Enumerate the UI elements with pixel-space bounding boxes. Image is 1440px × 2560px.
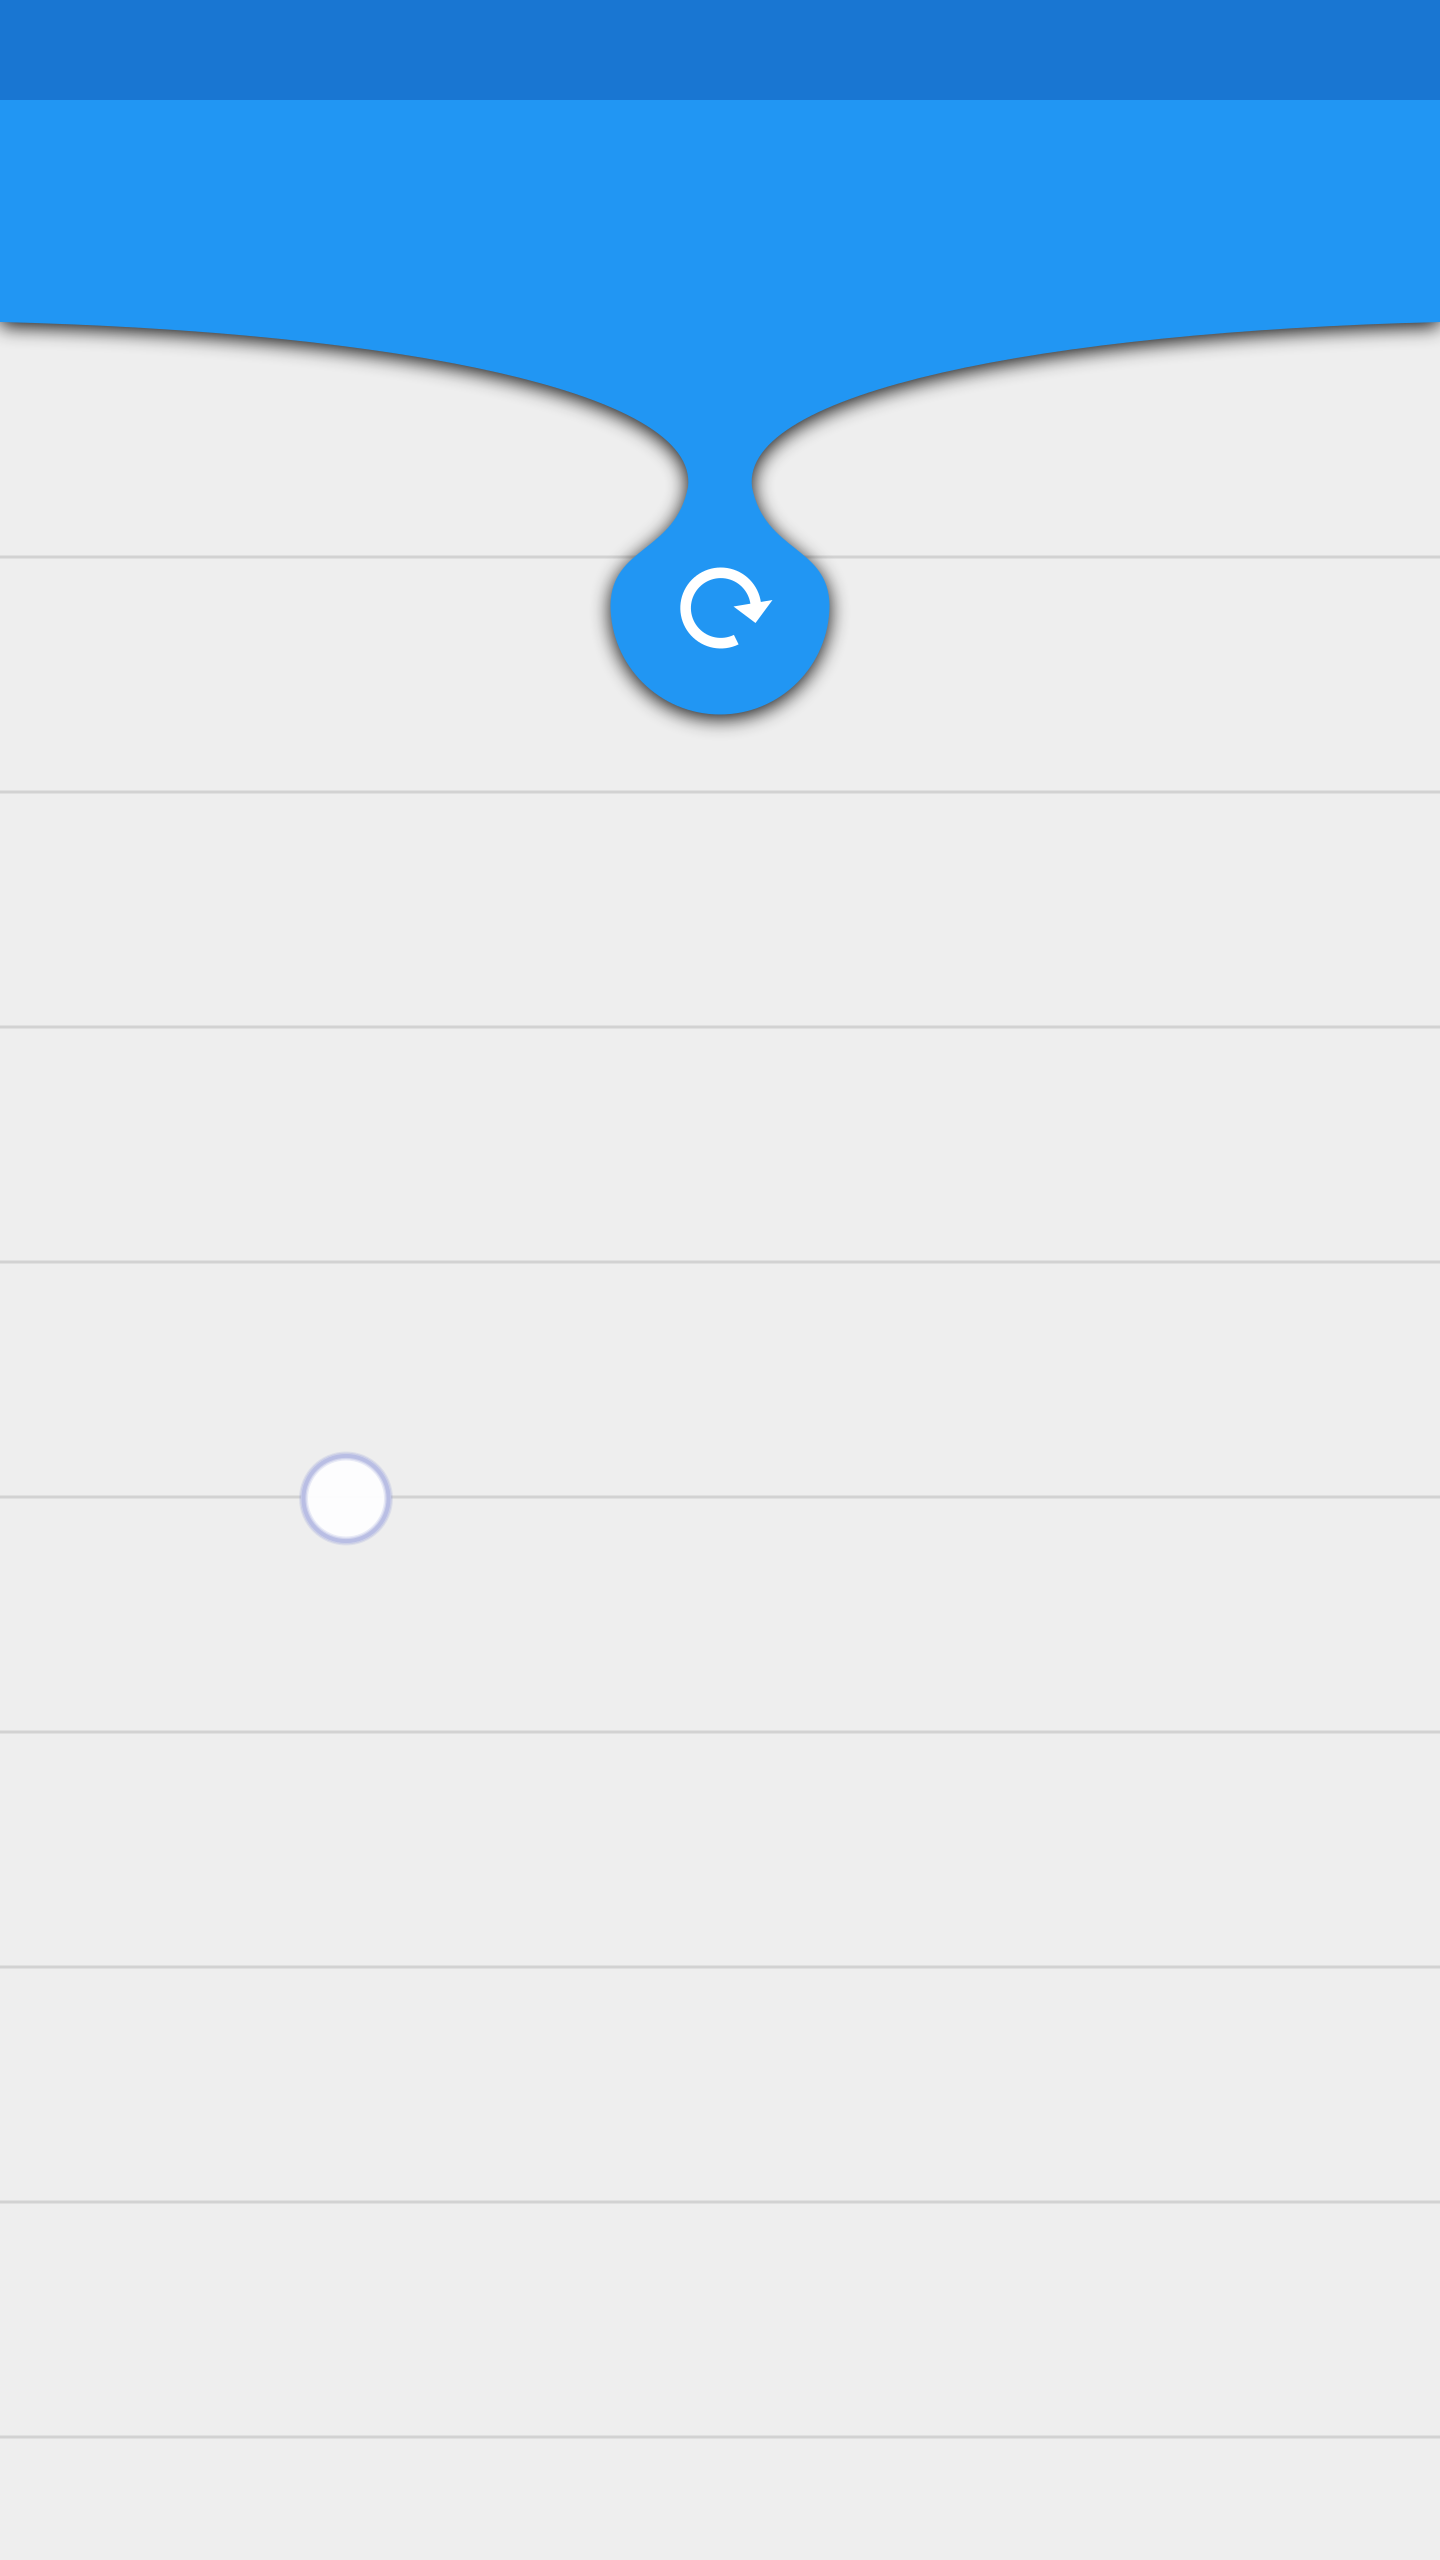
button[interactable]: Refresh: [611, 498, 830, 717]
